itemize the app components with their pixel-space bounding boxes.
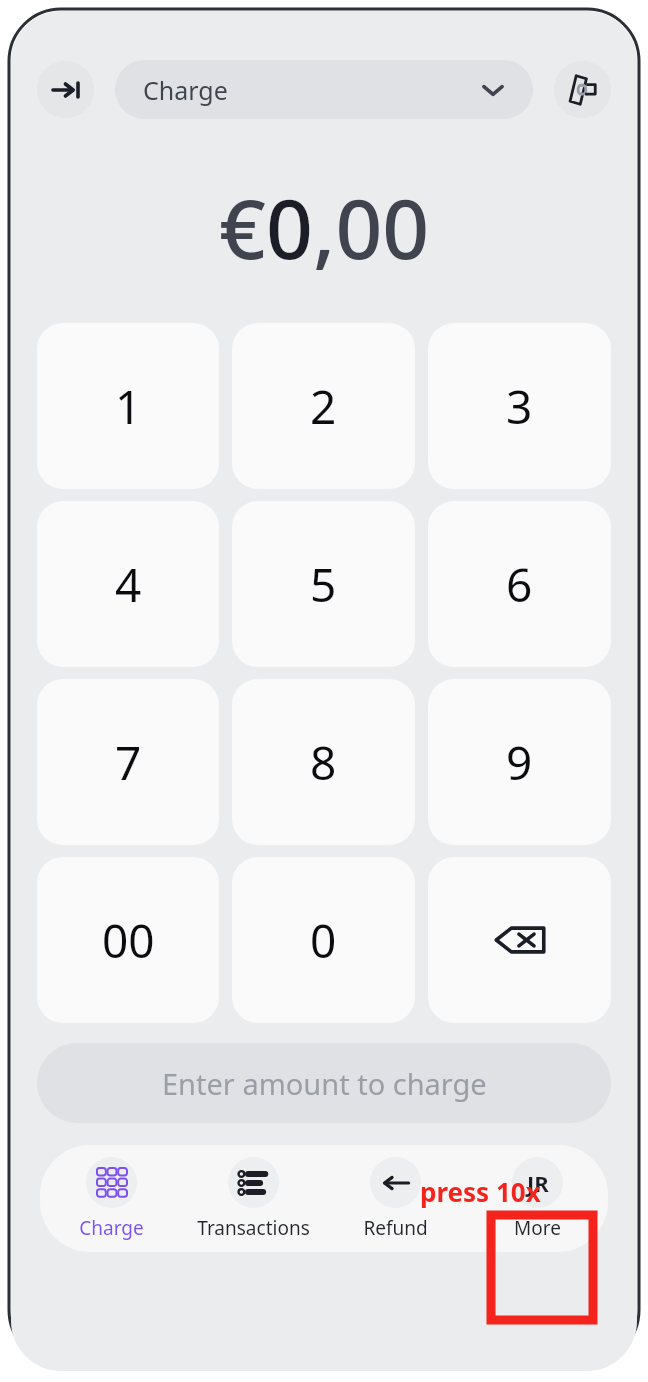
staticText: 4 bbox=[115, 553, 142, 616]
button[interactable]: 0 bbox=[232, 857, 415, 1023]
staticText: 7 bbox=[115, 731, 142, 794]
staticText: 1 bbox=[115, 375, 142, 438]
staticText: Transactions bbox=[197, 1215, 310, 1241]
staticText: 3 bbox=[506, 375, 533, 438]
button[interactable]: 5 bbox=[232, 501, 415, 667]
staticText: 2 bbox=[310, 375, 337, 438]
button[interactable]: Charge bbox=[40, 1145, 182, 1252]
staticText: 8 bbox=[310, 731, 337, 794]
staticText: 9 bbox=[506, 731, 533, 794]
staticText: 0 bbox=[266, 171, 313, 283]
staticText: 0 bbox=[310, 909, 337, 972]
staticText: ,00 bbox=[313, 171, 430, 283]
button[interactable]: 00 bbox=[37, 857, 219, 1023]
button[interactable]: Tap to pay bbox=[554, 61, 611, 118]
button[interactable]: Transactions bbox=[182, 1145, 324, 1252]
staticText: € bbox=[219, 171, 266, 283]
button[interactable]: 3 bbox=[428, 323, 611, 489]
button[interactable]: 8 bbox=[232, 679, 415, 845]
staticText: Refund bbox=[363, 1215, 428, 1241]
button[interactable]: Log out bbox=[37, 61, 94, 118]
staticText: 6 bbox=[506, 553, 533, 616]
button[interactable]: 1 bbox=[37, 323, 219, 489]
button[interactable]: Charge bbox=[115, 60, 533, 119]
button[interactable]: Refund bbox=[324, 1145, 466, 1252]
staticText: JR bbox=[527, 1168, 549, 1198]
staticText: More bbox=[514, 1215, 561, 1241]
button[interactable]: Backspace bbox=[428, 857, 611, 1023]
button[interactable]: 9 bbox=[428, 679, 611, 845]
staticText: press 10x bbox=[420, 1174, 541, 1209]
button[interactable]: 7 bbox=[37, 679, 219, 845]
staticText: 00 bbox=[102, 909, 155, 972]
staticText: Charge bbox=[143, 73, 228, 107]
button[interactable]: 2 bbox=[232, 323, 415, 489]
button[interactable]: Enter amount to charge bbox=[37, 1043, 611, 1123]
button[interactable]: 4 bbox=[37, 501, 219, 667]
staticText: Charge bbox=[79, 1215, 144, 1241]
staticText: Enter amount to charge bbox=[162, 1064, 487, 1103]
staticText: 5 bbox=[310, 553, 337, 616]
button[interactable]: 6 bbox=[428, 501, 611, 667]
button[interactable]: JR bbox=[466, 1145, 608, 1252]
